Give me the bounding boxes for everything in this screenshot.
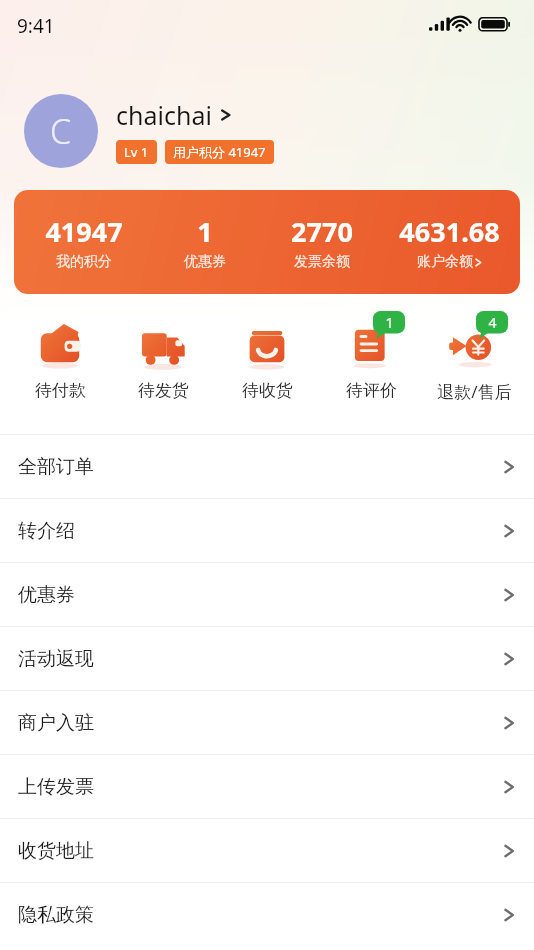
staticText: 优惠券 <box>184 253 226 271</box>
button[interactable]: 转介绍 <box>0 499 534 562</box>
staticText: 4631.68 <box>399 213 500 250</box>
button[interactable]: 41947 <box>18 213 149 271</box>
button[interactable]: 4 <box>424 315 524 405</box>
staticText: 优惠券 <box>18 583 503 607</box>
staticText: 4 <box>488 313 497 332</box>
staticText: 我的积分 <box>56 253 112 271</box>
staticText: 活动返现 <box>18 647 503 671</box>
button[interactable]: 待付款 <box>10 315 110 403</box>
button[interactable]: 待发货 <box>113 315 213 403</box>
staticText: 转介绍 <box>18 519 503 543</box>
button[interactable]: 41947 <box>14 190 520 294</box>
button[interactable]: 2770 <box>261 213 382 271</box>
button[interactable]: 全部订单 <box>0 435 534 498</box>
staticText: 账户余额 <box>417 253 473 271</box>
staticText: 上传发票 <box>18 775 503 799</box>
staticText: 2770 <box>291 213 353 250</box>
staticText: 1 <box>197 213 213 250</box>
button[interactable]: 4631.68 <box>382 213 516 271</box>
button[interactable]: 待收货 <box>217 315 317 403</box>
staticText: 全部订单 <box>18 455 503 479</box>
staticText: 商户入驻 <box>18 711 503 735</box>
staticText: 用户积分 41947 <box>173 143 266 161</box>
button[interactable]: chaichai <box>116 98 232 132</box>
button[interactable]: 1 <box>321 315 421 403</box>
staticText: 41947 <box>45 213 123 250</box>
staticText: 待付款 <box>35 380 86 401</box>
staticText: 退款/售后 <box>437 380 512 403</box>
button[interactable]: 商户入驻 <box>0 691 534 754</box>
staticText: Lv 1 <box>124 143 149 161</box>
button[interactable]: C <box>24 94 98 168</box>
button[interactable]: 1 <box>149 213 261 271</box>
button[interactable]: 收货地址 <box>0 819 534 882</box>
button[interactable]: 上传发票 <box>0 755 534 818</box>
staticText: 隐私政策 <box>18 903 503 927</box>
staticText: 收货地址 <box>18 839 503 863</box>
staticText: chaichai <box>116 98 212 132</box>
staticText: C <box>50 108 72 154</box>
button[interactable]: 隐私政策 <box>0 883 534 946</box>
button[interactable]: 活动返现 <box>0 627 534 690</box>
button[interactable]: 优惠券 <box>0 563 534 626</box>
staticText: 待收货 <box>242 380 293 401</box>
staticText: 发票余额 <box>294 253 350 271</box>
button[interactable]: Lv 1 <box>116 140 157 164</box>
staticText: 1 <box>385 313 394 332</box>
staticText: 待评价 <box>346 380 397 401</box>
staticText: 待发货 <box>138 380 189 401</box>
staticText: 9:41 <box>17 13 55 39</box>
button[interactable]: 用户积分 41947 <box>165 140 274 164</box>
